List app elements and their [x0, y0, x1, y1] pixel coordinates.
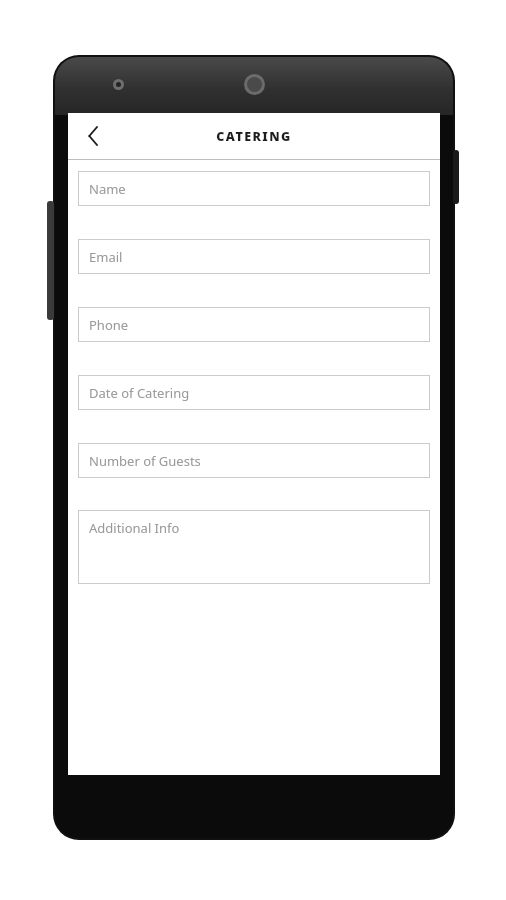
button[interactable]: Back	[76, 119, 110, 153]
button[interactable]: Phone	[78, 307, 430, 342]
staticText: CATERING	[216, 128, 292, 145]
staticText: Name	[89, 180, 126, 198]
button[interactable]: Email	[78, 239, 430, 274]
button[interactable]: Date of Catering	[78, 375, 430, 410]
button[interactable]: Number of Guests	[78, 443, 430, 478]
staticText: Additional Info	[89, 519, 180, 537]
staticText: Email	[89, 248, 123, 266]
staticText: Number of Guests	[89, 452, 201, 470]
staticText: Phone	[89, 316, 129, 334]
button[interactable]: Additional Info	[78, 510, 430, 584]
button[interactable]: Name	[78, 171, 430, 206]
staticText: Date of Catering	[89, 384, 190, 402]
